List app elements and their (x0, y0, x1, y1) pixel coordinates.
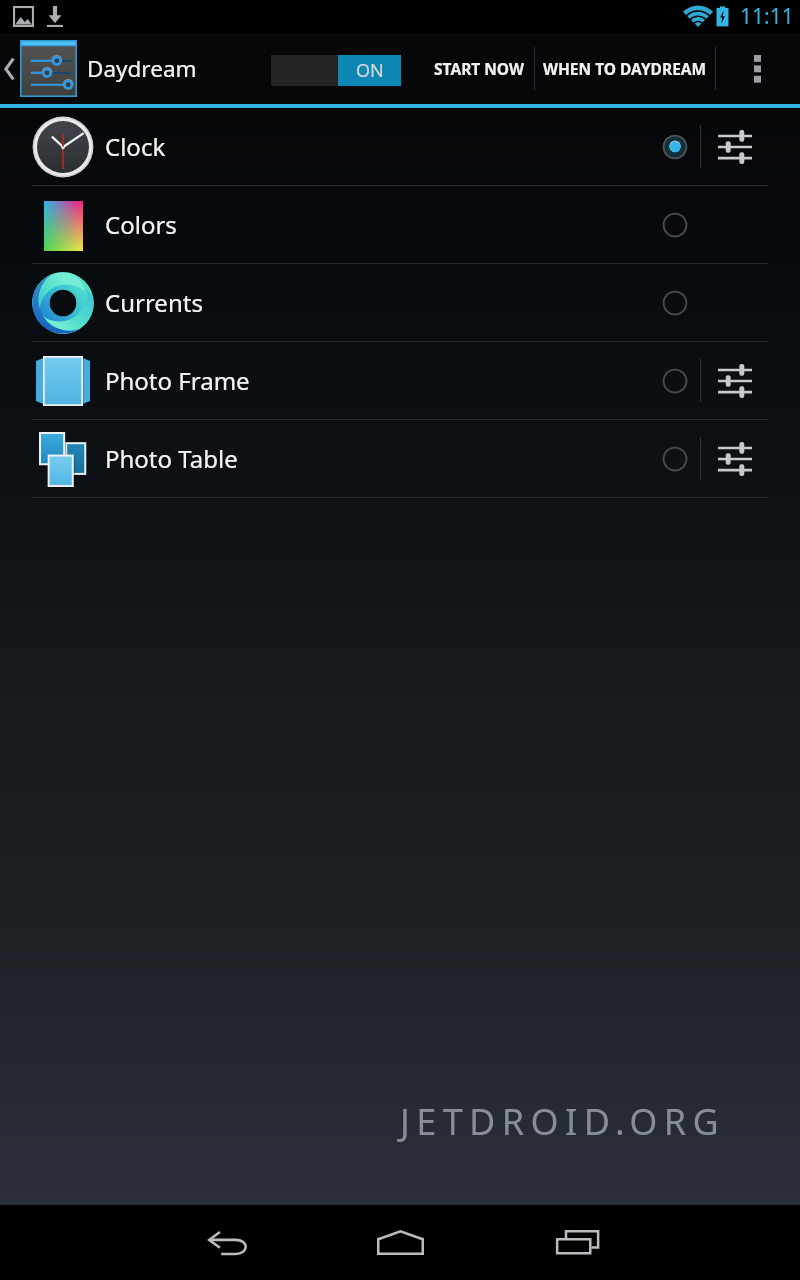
button[interactable]: Currents (0, 264, 800, 341)
button[interactable]: ON (271, 55, 401, 86)
button[interactable]: Colors (0, 186, 800, 263)
button[interactable]: Recent apps (455, 1205, 800, 1280)
staticText: Colors (105, 208, 177, 241)
button[interactable]: Select Photo Table (650, 420, 700, 497)
button[interactable]: Home (345, 1205, 455, 1280)
button[interactable]: START NOW (417, 33, 541, 104)
staticText: Currents (105, 286, 203, 319)
staticText: 11:11 (740, 2, 794, 31)
button[interactable]: WHEN TO DAYDREAM (535, 33, 715, 104)
staticText: Photo Frame (105, 364, 250, 397)
staticText: Clock (105, 130, 166, 163)
button[interactable]: Settings for Photo Table (701, 420, 769, 497)
button[interactable]: Photo Table (0, 420, 800, 497)
button[interactable]: Select Currents (650, 264, 700, 341)
staticText: ON (356, 58, 384, 83)
button[interactable]: Select Photo Frame (650, 342, 700, 419)
button[interactable]: More options (716, 33, 800, 104)
button[interactable]: Settings for Photo Frame (701, 342, 769, 419)
button[interactable]: Select Clock (650, 108, 700, 185)
button[interactable]: Back (0, 1205, 345, 1280)
button[interactable]: Navigate up (0, 33, 270, 104)
button[interactable]: Clock (0, 108, 800, 185)
staticText: START NOW (434, 58, 524, 79)
staticText: Daydream (87, 53, 197, 84)
staticText: Photo Table (105, 442, 238, 475)
button[interactable]: Photo Frame (0, 342, 800, 419)
button[interactable]: Settings for Clock (701, 108, 769, 185)
other: Navigate up (3, 56, 16, 82)
staticText: WHEN TO DAYDREAM (543, 58, 707, 79)
staticText: JETDROID.ORG (400, 1097, 726, 1146)
button[interactable]: Select Colors (650, 186, 700, 263)
